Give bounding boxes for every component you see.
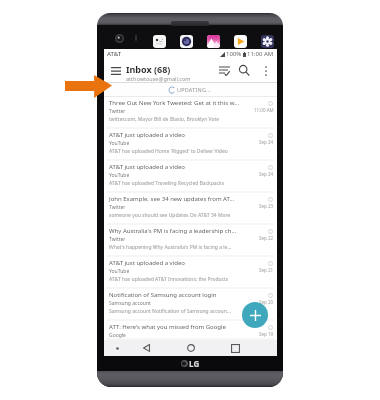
staticText: Twitter — [109, 204, 126, 211]
button[interactable]: Compose — [242, 302, 268, 328]
staticText: 11:00 AM — [254, 107, 274, 113]
staticText: Sep 21 — [259, 267, 274, 273]
staticText: Samsung account Notification of Samsung … — [109, 308, 231, 315]
button[interactable]: Three Out New York Tweeted: Get at it th… — [104, 97, 277, 129]
button[interactable]: Home — [184, 341, 198, 355]
staticText: Twitter — [109, 108, 126, 115]
button[interactable]: Recent apps — [228, 341, 242, 355]
staticText: AT&T just uploaded a video — [109, 163, 185, 171]
staticText: someone you should see Updates On AT&T 3… — [109, 212, 231, 219]
staticText: AT&T — [107, 50, 122, 58]
staticText: AT&T has uploaded AT&T Innovations: the … — [109, 276, 229, 283]
button[interactable]: AT&T just uploaded a video — [104, 161, 277, 193]
button[interactable]: App — [180, 35, 193, 48]
staticText: Google — [109, 332, 126, 339]
staticText: Sep 24 — [259, 171, 274, 177]
staticText: Twitter — [109, 236, 126, 243]
button[interactable]: App — [234, 35, 247, 48]
staticText: YouTube — [109, 172, 130, 179]
staticText: Why Australia's PM is facing a leadershi… — [109, 227, 237, 235]
button[interactable]: Notification of Samsung account login — [104, 289, 277, 321]
staticText: Inbox (68) — [126, 63, 171, 75]
staticText: Three Out New York Tweeted: Get at it th… — [109, 99, 240, 107]
button[interactable]: Open navigation drawer — [107, 62, 124, 79]
button[interactable]: Search — [236, 62, 253, 79]
staticText: Sep 23 — [259, 203, 274, 209]
staticText: YouTube — [109, 268, 130, 275]
button[interactable]: ATT: Here's what you missed from Google — [104, 321, 277, 340]
staticText: 100% — [226, 50, 242, 58]
button[interactable]: More options — [259, 64, 273, 78]
staticText: 11:00 AM — [247, 50, 274, 58]
staticText: Sep 22 — [259, 235, 274, 241]
staticText: Samsung account — [109, 300, 151, 307]
staticText: Sep 24 — [259, 139, 274, 145]
staticText: What's happening Why Australia's PM is f… — [109, 244, 232, 251]
staticText: Sep 19 — [259, 331, 274, 337]
staticText: AT&T has uploaded Traveling Recycled Bac… — [109, 180, 225, 187]
staticText: twitter.com, Mayor Bill de Blasio, Brook… — [109, 116, 220, 123]
staticText: AT&T just uploaded a video — [109, 259, 185, 267]
staticText: Sep 20 — [259, 299, 274, 305]
staticText: John Example, see 34 new updates from AT… — [109, 195, 235, 203]
staticText: AT&T has uploaded Home 'Rigged' to Deliv… — [109, 148, 228, 155]
staticText: ATT: Here's what you missed from Google — [109, 323, 226, 331]
button[interactable]: App — [153, 35, 166, 48]
staticText: UPDATING... — [177, 86, 212, 93]
staticText: AT&T just uploaded a video — [109, 131, 185, 139]
button[interactable]: John Example, see 34 new updates from AT… — [104, 193, 277, 225]
staticText: LG — [189, 358, 200, 369]
button[interactable]: Why Australia's PM is facing a leadershi… — [104, 225, 277, 257]
button[interactable]: AT&T just uploaded a video — [104, 257, 277, 289]
button[interactable]: Select all — [216, 62, 233, 79]
staticText: Notification of Samsung account login — [109, 291, 217, 299]
staticText: YouTube — [109, 140, 130, 147]
button[interactable]: App — [207, 35, 220, 48]
staticText: atthowtouse@gmail.com — [126, 75, 191, 82]
button[interactable]: App — [261, 35, 274, 48]
button[interactable]: AT&T just uploaded a video — [104, 129, 277, 161]
button[interactable]: Back — [139, 341, 153, 355]
button[interactable]: Capture screen — [110, 341, 124, 355]
